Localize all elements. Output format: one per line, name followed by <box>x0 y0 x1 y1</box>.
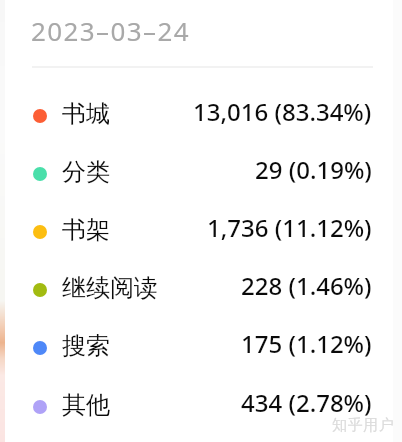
button[interactable]: 继续阅读 <box>5 261 393 319</box>
staticText: 继续阅读 <box>62 273 158 303</box>
staticText: 分类 <box>62 157 110 187</box>
button[interactable]: 其他 <box>5 378 393 436</box>
staticText: 知乎用户 <box>332 416 395 435</box>
staticText: 29 (0.19%) <box>255 153 372 186</box>
staticText: 175 (1.12%) <box>241 327 372 360</box>
staticText: 434 (2.78%) <box>241 386 372 419</box>
button[interactable]: 搜索 <box>5 319 393 377</box>
staticText: 13,016 (83.34%) <box>193 95 372 128</box>
staticText: 1,736 (11.12%) <box>207 211 372 244</box>
staticText: 其他 <box>62 390 110 420</box>
button[interactable]: 书城 <box>5 87 393 145</box>
staticText: 228 (1.46%) <box>241 269 372 302</box>
button[interactable]: 分类 <box>5 145 393 203</box>
staticText: 搜索 <box>62 331 110 361</box>
button[interactable]: 书架 <box>5 203 393 261</box>
staticText: 书架 <box>62 215 110 245</box>
staticText: 书城 <box>62 99 110 129</box>
staticText: 2023–03–24 <box>31 13 190 48</box>
